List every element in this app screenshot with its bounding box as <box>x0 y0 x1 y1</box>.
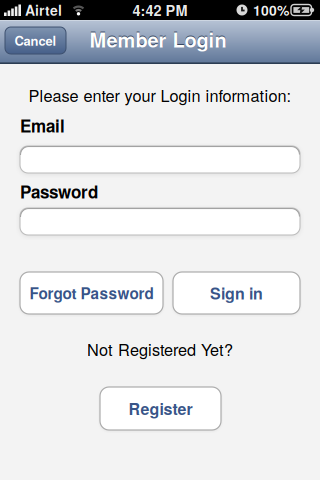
staticText: Cancel <box>14 31 56 50</box>
staticText: Email <box>20 113 65 138</box>
staticText: Forgot Password <box>29 282 153 304</box>
staticText: 4:42 PM <box>132 0 187 20</box>
staticText: Airtel <box>25 0 62 20</box>
staticText: Password <box>20 179 98 204</box>
staticText: Please enter your Login information: <box>28 83 291 107</box>
staticText: 100% <box>253 0 289 20</box>
staticText: Not Registered Yet? <box>87 337 233 361</box>
staticText: Member Login <box>89 25 226 54</box>
staticText: Member Login <box>89 24 226 53</box>
staticText: Register <box>128 397 192 420</box>
staticText: Sign in <box>210 281 263 304</box>
